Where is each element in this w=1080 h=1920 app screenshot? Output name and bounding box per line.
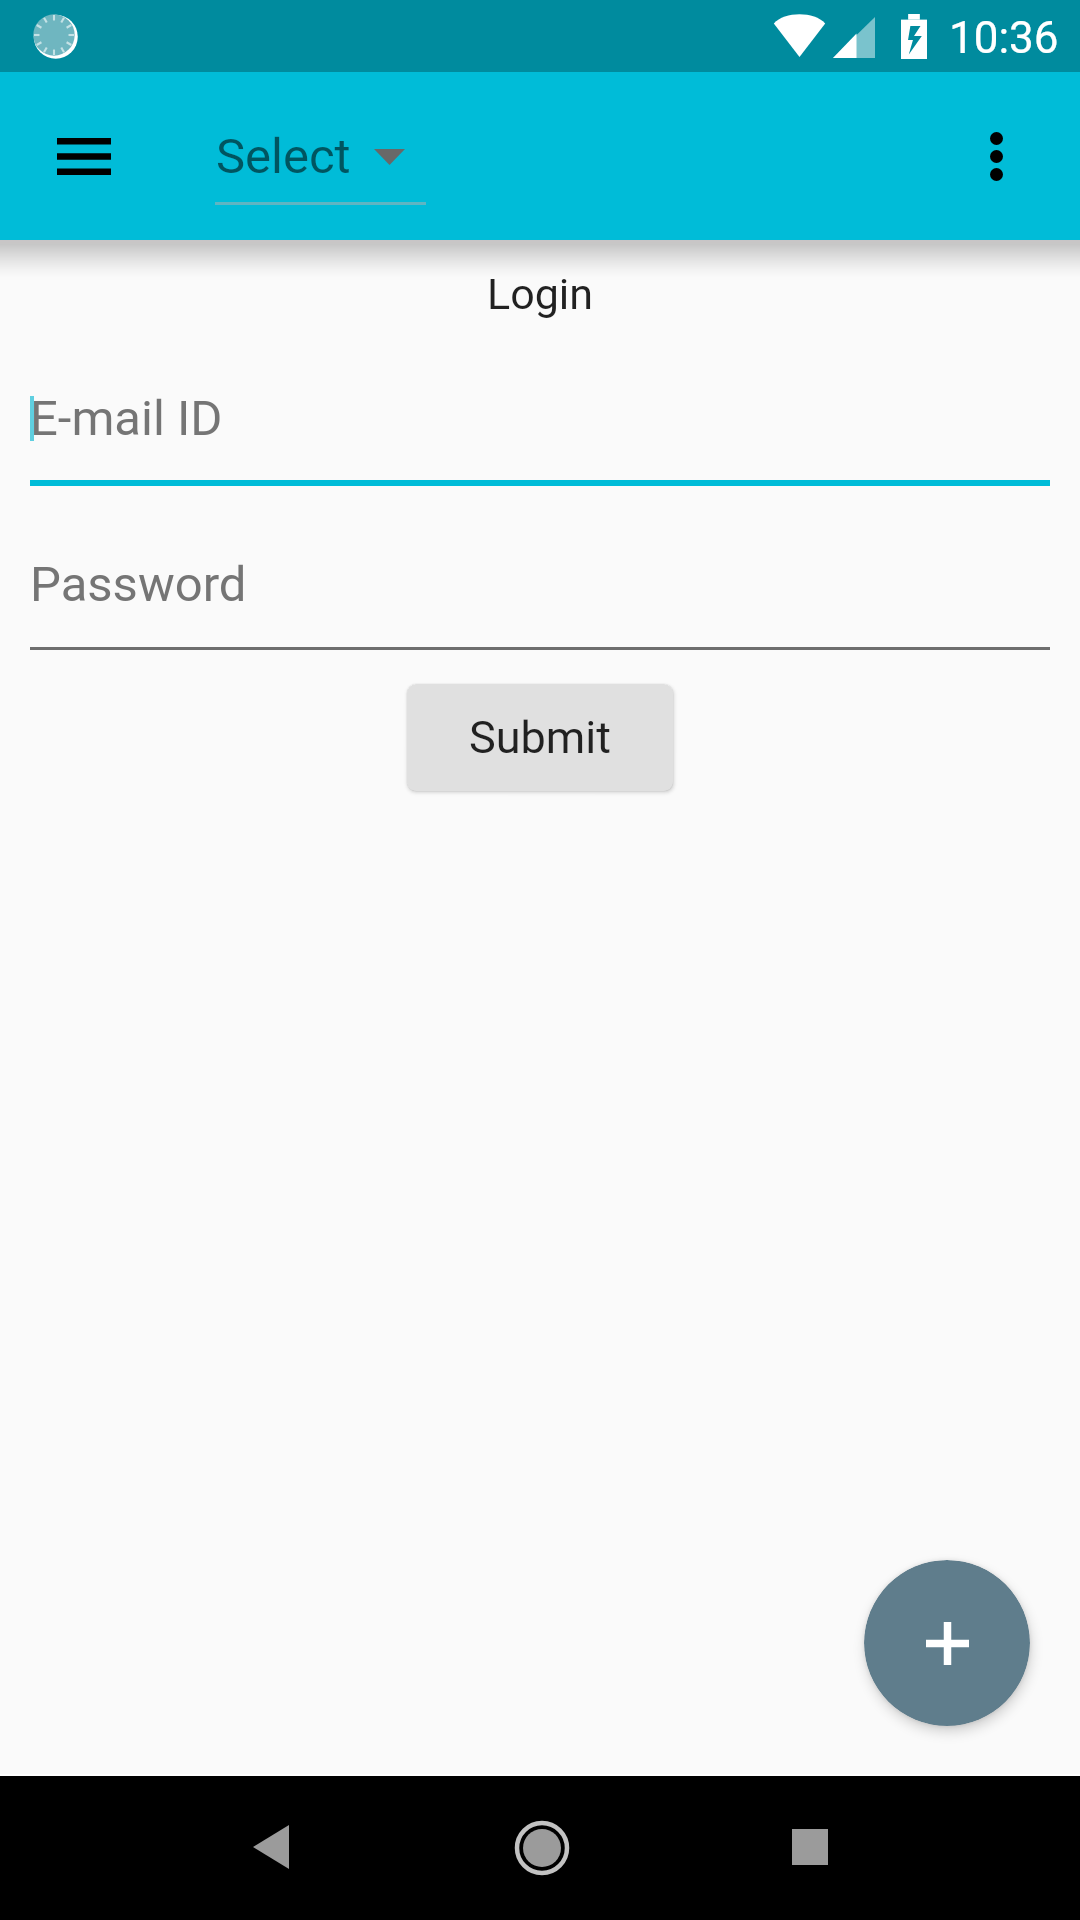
staticText: 10:36 — [949, 12, 1059, 64]
staticText: Select — [216, 128, 351, 185]
staticText: Password — [30, 556, 247, 613]
button[interactable]: Recent apps — [755, 1792, 864, 1901]
button[interactable]: Submit — [407, 684, 673, 791]
button[interactable]: Select — [215, 98, 426, 198]
staticText: E-mail ID — [30, 390, 223, 447]
button[interactable]: Open navigation menu — [42, 114, 126, 198]
button[interactable]: Back — [216, 1792, 325, 1901]
button[interactable]: Home — [487, 1793, 596, 1902]
staticText: Submit — [469, 711, 611, 764]
staticText: Login — [0, 269, 1080, 319]
button[interactable]: Password — [0, 540, 1080, 645]
button[interactable]: Add — [864, 1560, 1030, 1726]
button[interactable]: E-mail ID — [0, 375, 1080, 480]
button[interactable]: More options — [954, 114, 1038, 198]
